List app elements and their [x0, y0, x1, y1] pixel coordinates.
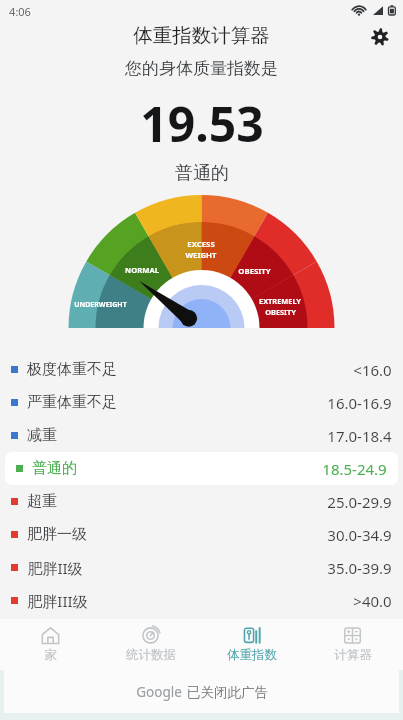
button[interactable]: 普通的 [5, 452, 398, 485]
staticText: <16.0 [353, 360, 392, 380]
staticText: 您的身体质量指数是 [125, 58, 278, 79]
button[interactable]: 家 [0, 619, 100, 670]
button[interactable]: 极度体重不足 [0, 353, 403, 386]
staticText: EXTREMELY [259, 296, 301, 306]
staticText: 17.0-18.4 [327, 426, 392, 446]
staticText: 16.0-16.9 [327, 393, 392, 413]
staticText: 肥胖一级 [27, 525, 87, 544]
staticText: 30.0-34.9 [327, 525, 392, 545]
staticText: 体重指数计算器 [133, 23, 270, 48]
staticText: WEIGHT [185, 250, 217, 261]
staticText: OBESITY [265, 307, 296, 317]
staticText: Google [136, 683, 182, 701]
staticText: 已关闭此广告 [187, 684, 268, 701]
staticText: 极度体重不足 [27, 360, 117, 379]
staticText: 普通的 [32, 459, 77, 478]
staticText: 19.53 [140, 91, 264, 156]
staticText: 严重体重不足 [27, 393, 117, 412]
staticText: 体重指数 [227, 647, 277, 663]
staticText: 计算器 [334, 647, 372, 663]
staticText: 4:06 [9, 4, 31, 19]
button[interactable]: 肥胖II级 [0, 551, 403, 584]
staticText: 18.5-24.9 [322, 459, 387, 479]
staticText: 超重 [27, 492, 57, 511]
staticText: 肥胖II级 [27, 558, 83, 578]
button[interactable]: Settings [363, 20, 397, 54]
staticText: UNDERWEIGHT [74, 300, 127, 310]
button[interactable]: 严重体重不足 [0, 386, 403, 419]
staticText: 35.0-39.9 [327, 558, 392, 578]
button[interactable]: 肥胖III级 [0, 584, 403, 617]
staticText: NORMAL [125, 265, 159, 275]
button[interactable]: 统计数据 [100, 619, 201, 670]
staticText: >40.0 [353, 591, 392, 611]
staticText: 25.0-29.9 [327, 492, 392, 512]
button[interactable]: 计算器 [302, 619, 403, 670]
button[interactable]: 减重 [0, 419, 403, 452]
button[interactable]: 超重 [0, 485, 403, 518]
staticText: OBESITY [238, 266, 271, 277]
staticText: 减重 [27, 426, 57, 445]
staticText: 家 [44, 647, 57, 663]
staticText: 统计数据 [126, 647, 176, 663]
button[interactable]: 肥胖一级 [0, 518, 403, 551]
button[interactable]: 体重指数 [201, 619, 302, 670]
staticText: EXCESS [187, 239, 215, 250]
staticText: 普通的 [175, 162, 229, 185]
staticText: 肥胖III级 [27, 591, 88, 611]
